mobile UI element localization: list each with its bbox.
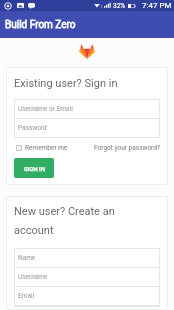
button[interactable]: Username xyxy=(14,267,160,287)
staticText: New user? Create an account xyxy=(14,205,150,237)
staticText: Name xyxy=(18,254,36,262)
other: GitLab logo xyxy=(79,44,95,59)
staticText: 32% xyxy=(113,2,126,10)
staticText: Username or Email xyxy=(18,105,73,113)
staticText: Email xyxy=(18,292,35,300)
button[interactable]: Name xyxy=(14,248,160,268)
staticText: Existing user? Sign in xyxy=(14,77,118,90)
button[interactable]: Email xyxy=(14,286,160,306)
button[interactable]: SIGN IN xyxy=(14,158,54,178)
button[interactable]: Remember me xyxy=(16,144,68,152)
staticText: Username xyxy=(18,273,48,281)
staticText: 7:47 PM xyxy=(142,1,172,10)
staticText: Remember me xyxy=(25,144,68,152)
staticText: Password xyxy=(18,124,47,132)
staticText: SIGN IN xyxy=(24,165,45,172)
button[interactable]: Username or Email xyxy=(14,99,160,119)
staticText: Build From Zero xyxy=(5,19,76,31)
button[interactable]: Password xyxy=(14,118,160,138)
button[interactable]: Forgot your password? xyxy=(94,144,160,152)
staticText: : xyxy=(101,2,103,9)
